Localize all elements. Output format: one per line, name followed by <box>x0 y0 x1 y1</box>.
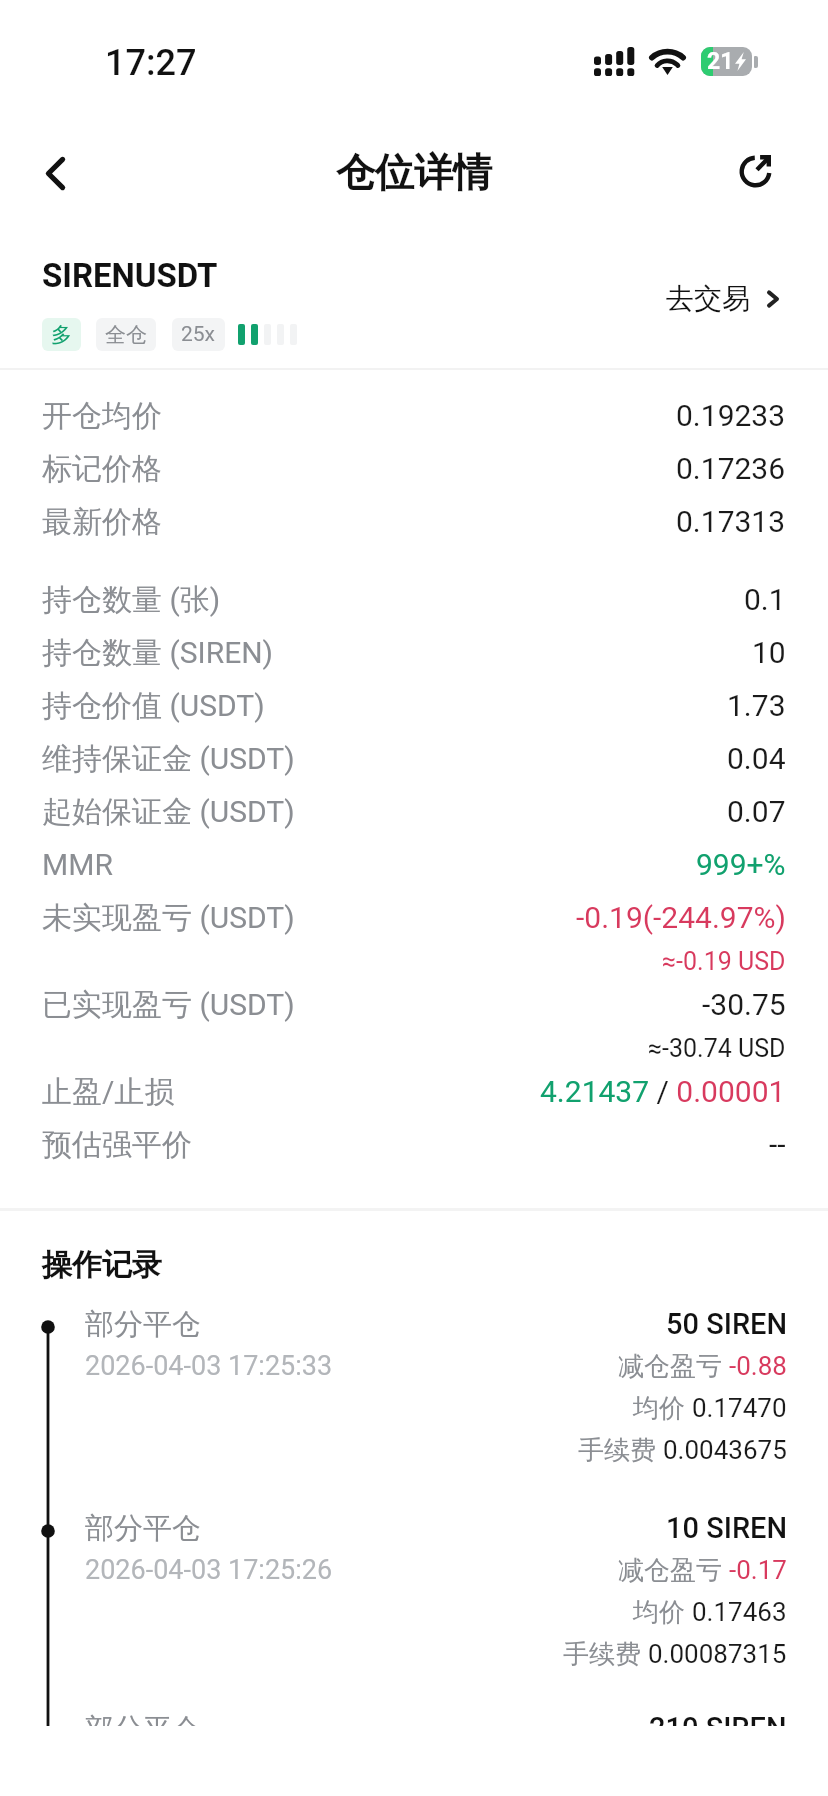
staticText: 0.17313 <box>676 504 786 539</box>
staticText: 部分平仓 <box>85 1711 201 1726</box>
staticText: 0.1 <box>744 582 786 617</box>
staticText: 维持保证金 (USDT) <box>42 740 295 778</box>
staticText: 去交易 <box>666 281 750 316</box>
staticText: 均价 <box>633 1392 692 1425</box>
staticText: 手续费 <box>578 1434 663 1467</box>
staticText: ≈-0.19 USD <box>662 947 786 976</box>
staticText: 已实现盈亏 (USDT) <box>42 986 295 1024</box>
staticText: 0.00087315 <box>648 1639 787 1669</box>
staticText: 1.73 <box>727 688 786 723</box>
staticText: 持仓价值 (USDT) <box>42 687 265 725</box>
staticText: SIRENUSDT <box>42 256 218 295</box>
staticText: 手续费 <box>563 1638 648 1671</box>
staticText: 0.17470 <box>692 1393 787 1423</box>
staticText: 999+% <box>696 847 786 882</box>
button[interactable]: 部分平仓 <box>0 1303 828 1507</box>
staticText: 全仓 <box>105 322 147 348</box>
staticText: 开仓均价 <box>42 397 162 435</box>
staticText: 操作记录 <box>42 1246 162 1284</box>
staticText: 21 <box>707 48 734 75</box>
staticText: 减仓盈亏 <box>618 1554 729 1587</box>
staticText: 0.17463 <box>692 1597 787 1627</box>
button[interactable]: Back <box>19 137 91 209</box>
staticText: 0.04 <box>727 741 786 776</box>
staticText: 多 <box>51 322 72 348</box>
staticText: 部分平仓 <box>85 1510 201 1547</box>
staticText: 减仓盈亏 <box>618 1350 729 1383</box>
staticText: -30.75 <box>702 987 786 1022</box>
staticText: 止盈/止损 <box>42 1073 175 1111</box>
staticText: 0.0043675 <box>663 1435 787 1465</box>
staticText: 0.19233 <box>676 398 786 433</box>
staticText: 仓位详情 <box>336 148 492 197</box>
staticText: -- <box>769 1127 786 1162</box>
staticText: 0.07 <box>727 794 786 829</box>
staticText: 10 SIREN <box>666 1511 787 1545</box>
staticText: 2026-04-03 17:25:33 <box>85 1350 333 1382</box>
staticText: -0.88 <box>729 1351 787 1381</box>
staticText: 起始保证金 (USDT) <box>42 793 295 831</box>
staticText: 2026-04-03 17:25:26 <box>85 1554 333 1586</box>
staticText: 17:27 <box>105 42 197 84</box>
staticText: 25x <box>181 322 216 347</box>
staticText: 0.17236 <box>676 451 786 486</box>
staticText: 10 <box>752 635 786 670</box>
staticText: 未实现盈亏 (USDT) <box>42 899 295 937</box>
staticText: ≈-30.74 USD <box>648 1034 786 1063</box>
staticText: 部分平仓 <box>85 1306 201 1343</box>
button[interactable]: Share <box>732 148 782 198</box>
staticText: 持仓数量 (SIREN) <box>42 634 274 672</box>
staticText: 均价 <box>633 1596 692 1629</box>
button[interactable]: 部分平仓 <box>0 1711 828 1726</box>
staticText: 50 SIREN <box>666 1307 787 1341</box>
staticText: 最新价格 <box>42 503 162 541</box>
staticText: MMR <box>42 847 113 882</box>
staticText: 210 SIREN <box>649 1711 787 1726</box>
staticText: 预估强平价 <box>42 1126 192 1164</box>
staticText: -0.17 <box>729 1555 787 1585</box>
staticText: 标记价格 <box>42 450 162 488</box>
staticText: 4.21437 / 0.00001 <box>540 1074 786 1109</box>
button[interactable]: 去交易 <box>664 275 785 322</box>
staticText: -0.19(-244.97%) <box>576 900 786 935</box>
button[interactable]: 部分平仓 <box>0 1507 828 1711</box>
staticText: 持仓数量 (张) <box>42 581 221 619</box>
